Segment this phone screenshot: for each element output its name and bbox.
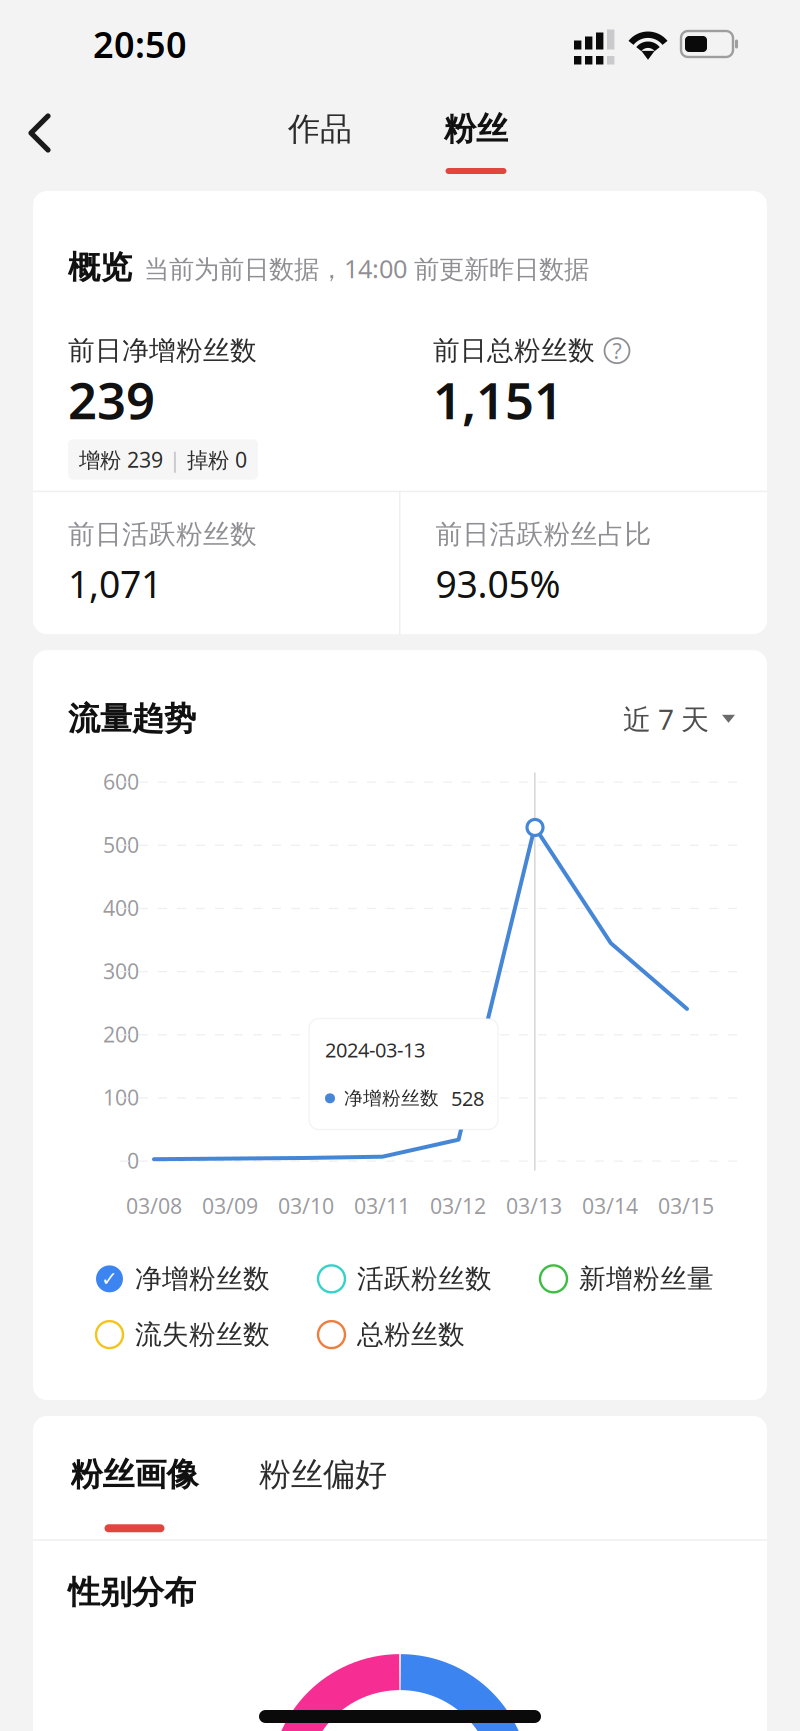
button[interactable]: 活跃粉丝数	[318, 1262, 492, 1295]
staticText: 粉丝偏好	[259, 1455, 387, 1494]
staticText: 03/11	[354, 1191, 410, 1220]
staticText: 03/10	[278, 1191, 334, 1220]
button[interactable]: 流失粉丝数	[96, 1318, 270, 1351]
staticText: 2024-03-13	[325, 1036, 425, 1063]
staticText: 03/12	[430, 1191, 486, 1220]
staticText: |	[163, 445, 187, 474]
staticText: 03/09	[202, 1191, 258, 1220]
staticText: 粉丝画像	[70, 1455, 198, 1494]
staticText: 528	[451, 1085, 484, 1112]
staticText: 净增粉丝数	[135, 1262, 270, 1295]
button[interactable]: 近 7 天	[623, 700, 735, 737]
staticText: 前日活跃粉丝占比	[435, 518, 651, 551]
staticText: 增粉 239	[79, 445, 163, 474]
button[interactable]: 粉丝画像	[68, 1455, 201, 1532]
staticText: 93.05%	[435, 559, 560, 608]
staticText: 前日净增粉丝数	[68, 334, 257, 367]
staticText: 活跃粉丝数	[357, 1262, 492, 1295]
staticText: 03/15	[658, 1191, 714, 1220]
staticText: 概览	[68, 248, 132, 287]
staticText: 流量趋势	[68, 699, 196, 738]
staticText: 0	[127, 1146, 139, 1175]
button[interactable]: 粉丝偏好	[201, 1455, 387, 1494]
button[interactable]: 总粉丝数	[318, 1318, 465, 1351]
staticText: 20:50	[93, 20, 187, 68]
staticText: 100	[103, 1083, 139, 1111]
button[interactable]: ✓	[96, 1262, 270, 1295]
staticText: 239	[68, 366, 155, 433]
staticText: 300	[103, 957, 139, 985]
button[interactable]: 作品	[264, 108, 376, 174]
staticText: 03/14	[582, 1191, 638, 1220]
staticText: ✓	[101, 1267, 118, 1290]
staticText: 03/13	[506, 1191, 562, 1220]
staticText: 600	[103, 767, 139, 796]
staticText: ?	[612, 336, 621, 365]
staticText: 500	[103, 830, 139, 859]
staticText: 新增粉丝量	[579, 1262, 714, 1295]
staticText: 粉丝	[444, 109, 508, 149]
staticText: 200	[103, 1020, 139, 1048]
staticText: 近 7 天	[623, 700, 709, 737]
staticText: 掉粉 0	[187, 445, 247, 474]
staticText: 性别分布	[68, 1573, 196, 1612]
staticText: 净增粉丝数	[344, 1087, 439, 1110]
button[interactable]: 新增粉丝量	[540, 1262, 714, 1295]
staticText: 当前为前日数据，14:00 前更新昨日数据	[144, 252, 589, 285]
staticText: 作品	[288, 109, 352, 149]
staticText: 总粉丝数	[357, 1318, 465, 1351]
button[interactable]: 粉丝	[420, 108, 532, 174]
staticText: 流失粉丝数	[135, 1318, 270, 1351]
button[interactable]: Back	[0, 88, 78, 173]
staticText: 前日总粉丝数	[433, 334, 595, 367]
staticText: 1,071	[68, 559, 162, 608]
staticText: 1,151	[433, 366, 563, 433]
staticText: 前日活跃粉丝数	[68, 518, 257, 551]
staticText: 400	[103, 894, 139, 922]
staticText: 03/08	[126, 1191, 182, 1220]
